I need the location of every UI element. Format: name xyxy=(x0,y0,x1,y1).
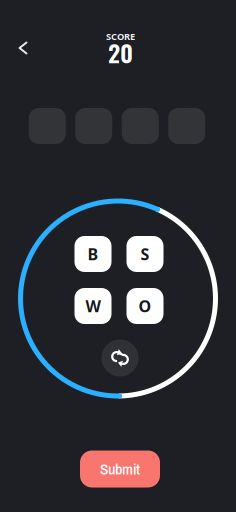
staticText: W xyxy=(85,295,100,317)
staticText: 20 xyxy=(108,35,133,70)
staticText: B xyxy=(87,243,98,265)
button[interactable]: O xyxy=(126,288,163,324)
button[interactable]: Back xyxy=(4,29,42,67)
button[interactable]: Submit xyxy=(80,450,160,487)
staticText: Submit xyxy=(100,459,140,479)
staticText: S xyxy=(140,243,149,265)
button[interactable]: S xyxy=(126,236,163,272)
staticText: O xyxy=(138,295,151,317)
button[interactable]: B xyxy=(74,236,111,272)
button[interactable]: Shuffle letters xyxy=(101,339,138,376)
button[interactable]: W xyxy=(74,288,111,324)
staticText: SCORE xyxy=(106,30,135,43)
